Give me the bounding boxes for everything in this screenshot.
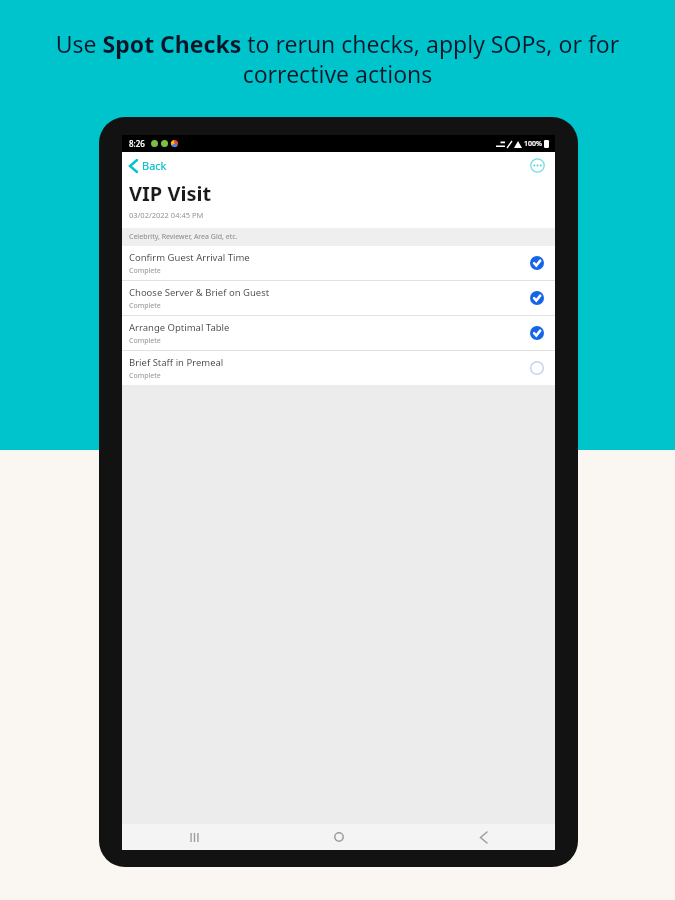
staticText: Complete — [129, 301, 161, 311]
button[interactable]: Choose Server & Brief on Guest — [122, 281, 555, 315]
button[interactable]: Brief Staff in Premeal — [122, 351, 555, 385]
staticText: Use Spot Checks to rerun checks, apply S… — [40, 28, 635, 90]
button[interactable]: Confirm Guest Arrival Time — [122, 246, 555, 280]
button[interactable]: More options — [528, 156, 546, 174]
staticText: 8:26 — [129, 138, 145, 149]
button[interactable]: Back — [411, 824, 555, 850]
button[interactable]: Recents — [122, 824, 267, 850]
staticText: Arrange Optimal Table — [129, 321, 230, 334]
button[interactable]: Back — [127, 155, 170, 176]
staticText: Choose Server & Brief on Guest — [129, 286, 270, 299]
staticText: VIP Visit — [129, 180, 212, 207]
staticText: Complete — [129, 336, 161, 346]
staticText: Brief Staff in Premeal — [129, 356, 224, 369]
staticText: Celebrity, Reviewer, Area Gld, etc. — [129, 232, 238, 242]
staticText: 100% — [524, 139, 542, 149]
staticText: Confirm Guest Arrival Time — [129, 251, 250, 264]
button[interactable]: Arrange Optimal Table — [122, 316, 555, 350]
staticText: 03/02/2022 04:45 PM — [129, 210, 204, 220]
button[interactable]: Home — [267, 824, 411, 850]
staticText: Back — [142, 158, 167, 173]
staticText: Complete — [129, 266, 161, 276]
staticText: Complete — [129, 371, 161, 381]
